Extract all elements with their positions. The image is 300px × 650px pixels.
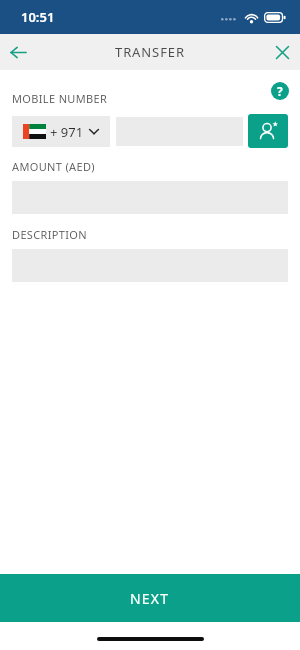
button[interactable]: Close bbox=[264, 34, 300, 70]
button[interactable]: + 971 bbox=[12, 116, 110, 147]
staticText: DESCRIPTION bbox=[12, 227, 88, 242]
button[interactable]: Pick contact bbox=[248, 114, 288, 148]
button[interactable]: NEXT bbox=[0, 574, 300, 622]
staticText: AMOUNT (AED) bbox=[12, 159, 95, 174]
staticText: NEXT bbox=[130, 589, 170, 608]
staticText: + 971 bbox=[50, 123, 84, 141]
staticText: ? bbox=[277, 83, 283, 99]
button[interactable]: Back bbox=[0, 34, 36, 70]
button[interactable]: Help bbox=[271, 82, 289, 100]
staticText: TRANSFER bbox=[115, 43, 185, 61]
staticText: 10:51 bbox=[21, 8, 55, 26]
staticText: MOBILE NUMBER bbox=[12, 91, 108, 106]
